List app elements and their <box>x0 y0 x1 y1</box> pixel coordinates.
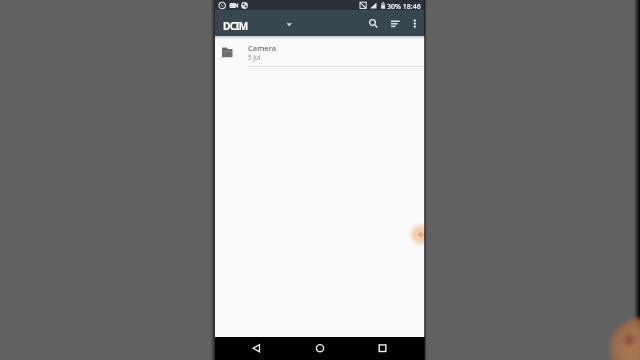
button[interactable] <box>355 337 425 360</box>
button[interactable] <box>408 15 422 31</box>
staticText: Camera <box>248 43 277 53</box>
button[interactable] <box>285 337 355 360</box>
button[interactable] <box>215 337 285 360</box>
staticText: 30% 18:46 <box>387 2 421 12</box>
staticText: DCIM <box>223 19 248 33</box>
button[interactable]: DCIM <box>219 12 299 34</box>
staticText: 5 Jul. <box>248 53 263 62</box>
button[interactable]: Camera <box>215 38 425 66</box>
button[interactable] <box>365 15 381 31</box>
button[interactable] <box>387 15 403 31</box>
